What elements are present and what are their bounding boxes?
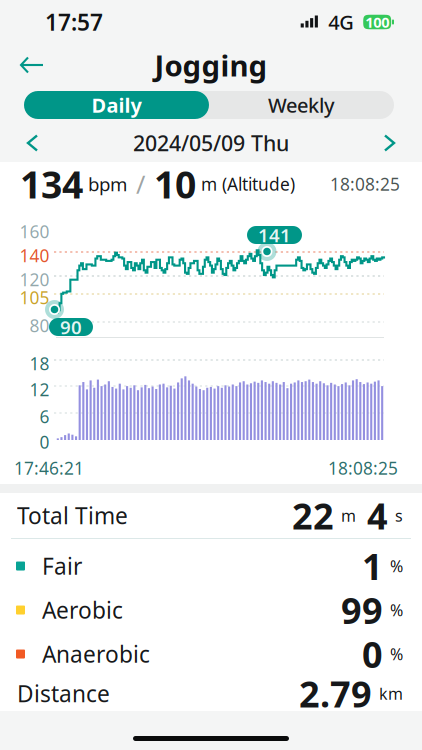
- staticText: Distance: [17, 678, 110, 708]
- staticText: 4G: [328, 9, 354, 35]
- button[interactable]: Back: [0, 44, 57, 86]
- staticText: Daily: [91, 92, 141, 118]
- staticText: 141: [258, 223, 291, 247]
- staticText: Weekly: [268, 92, 335, 118]
- button[interactable]: Fair: [0, 544, 422, 588]
- button[interactable]: Previous day: [0, 124, 53, 162]
- staticText: 2024/05/09 Thu: [133, 129, 289, 157]
- button[interactable]: Aerobic: [0, 588, 422, 632]
- staticText: 4: [367, 492, 388, 539]
- staticText: 6: [39, 405, 49, 428]
- staticText: bpm: [88, 172, 127, 196]
- staticText: 17:46:21: [14, 456, 84, 479]
- staticText: 18:08:25: [328, 456, 398, 479]
- button[interactable]: Distance: [0, 676, 422, 711]
- staticText: /: [136, 167, 145, 201]
- staticText: Anaerobic: [42, 639, 150, 669]
- staticText: 10: [154, 159, 196, 209]
- staticText: %: [390, 643, 403, 665]
- staticText: 134: [20, 159, 83, 209]
- staticText: 120: [19, 268, 49, 291]
- staticText: 160: [19, 220, 49, 243]
- staticText: 18:08:25: [330, 172, 400, 195]
- staticText: km: [379, 683, 403, 704]
- staticText: Fair: [42, 551, 82, 581]
- staticText: 90: [60, 315, 82, 339]
- staticText: %: [390, 555, 403, 577]
- staticText: Jogging: [154, 45, 267, 84]
- staticText: 80: [29, 314, 49, 337]
- staticText: s: [395, 505, 403, 526]
- staticText: 2.79: [299, 670, 372, 717]
- staticText: 17:57: [45, 7, 103, 37]
- button[interactable]: Total Time: [0, 493, 422, 538]
- button[interactable]: Next day: [369, 124, 422, 162]
- staticText: %: [390, 599, 403, 621]
- staticText: 18: [29, 352, 49, 375]
- staticText: 22: [292, 492, 334, 539]
- staticText: 1: [362, 542, 383, 590]
- staticText: 105: [19, 286, 49, 309]
- staticText: 0: [362, 630, 383, 678]
- button[interactable]: Daily: [24, 91, 209, 119]
- staticText: 140: [19, 244, 49, 267]
- staticText: m: [341, 505, 356, 526]
- staticText: Aerobic: [42, 595, 123, 625]
- staticText: Total Time: [17, 500, 128, 530]
- staticText: 12: [29, 378, 49, 401]
- staticText: 99: [341, 586, 383, 634]
- staticText: 100: [365, 12, 389, 32]
- staticText: 0: [39, 430, 49, 453]
- staticText: m (Altitude): [201, 172, 295, 195]
- button[interactable]: Anaerobic: [0, 632, 422, 676]
- button[interactable]: Weekly: [209, 91, 394, 119]
